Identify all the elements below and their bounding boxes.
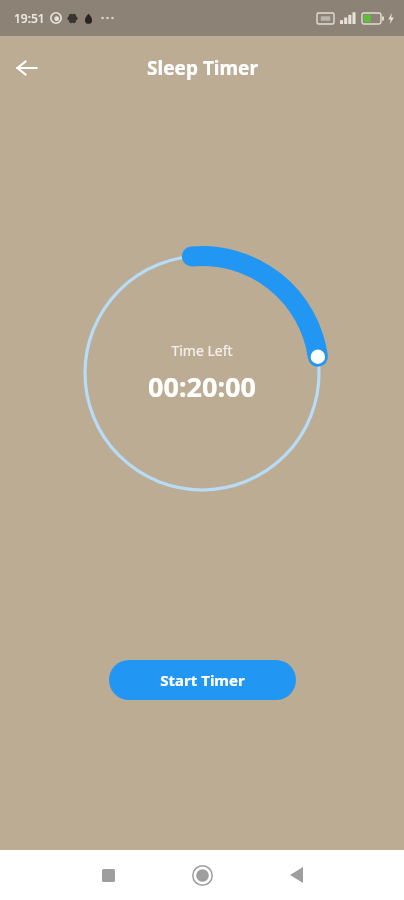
staticText: 19:51 bbox=[14, 10, 45, 26]
staticText: 00:20:00 bbox=[148, 368, 256, 405]
button[interactable]: Home bbox=[178, 851, 226, 899]
button[interactable]: Recent apps bbox=[84, 851, 132, 899]
staticText: Sleep Timer bbox=[147, 55, 258, 81]
staticText: Time Left bbox=[171, 341, 233, 360]
button[interactable]: Back bbox=[272, 851, 320, 899]
button[interactable]: Start Timer bbox=[109, 660, 296, 700]
button[interactable]: Back bbox=[6, 47, 48, 89]
staticText: Start Timer bbox=[160, 670, 245, 690]
